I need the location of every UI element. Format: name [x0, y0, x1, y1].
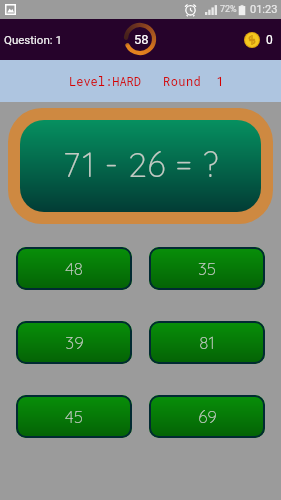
staticText: 0 [266, 33, 273, 47]
staticText: 71 - 26 = ? [63, 143, 219, 186]
staticText: 58 [134, 32, 149, 47]
button[interactable]: 35 [149, 247, 265, 290]
staticText: Level:HARD [69, 73, 142, 89]
button[interactable]: 45 [16, 395, 132, 438]
other: Coins [244, 32, 260, 48]
button[interactable]: 71 - 26 = ? [20, 120, 261, 212]
staticText: 39 [65, 332, 84, 353]
button[interactable]: 48 [16, 247, 132, 290]
button[interactable]: 39 [16, 321, 132, 364]
staticText: 69 [198, 406, 217, 427]
staticText: 01:23 [250, 3, 278, 16]
staticText: 72% [220, 4, 237, 15]
staticText: 81 [199, 332, 215, 353]
staticText: Question: 1 [4, 33, 62, 46]
staticText: Round 1 [163, 73, 225, 89]
staticText: 35 [198, 258, 216, 279]
button[interactable]: 81 [149, 321, 265, 364]
staticText: 48 [65, 258, 83, 279]
button[interactable]: 69 [149, 395, 265, 438]
staticText: 45 [65, 406, 83, 427]
